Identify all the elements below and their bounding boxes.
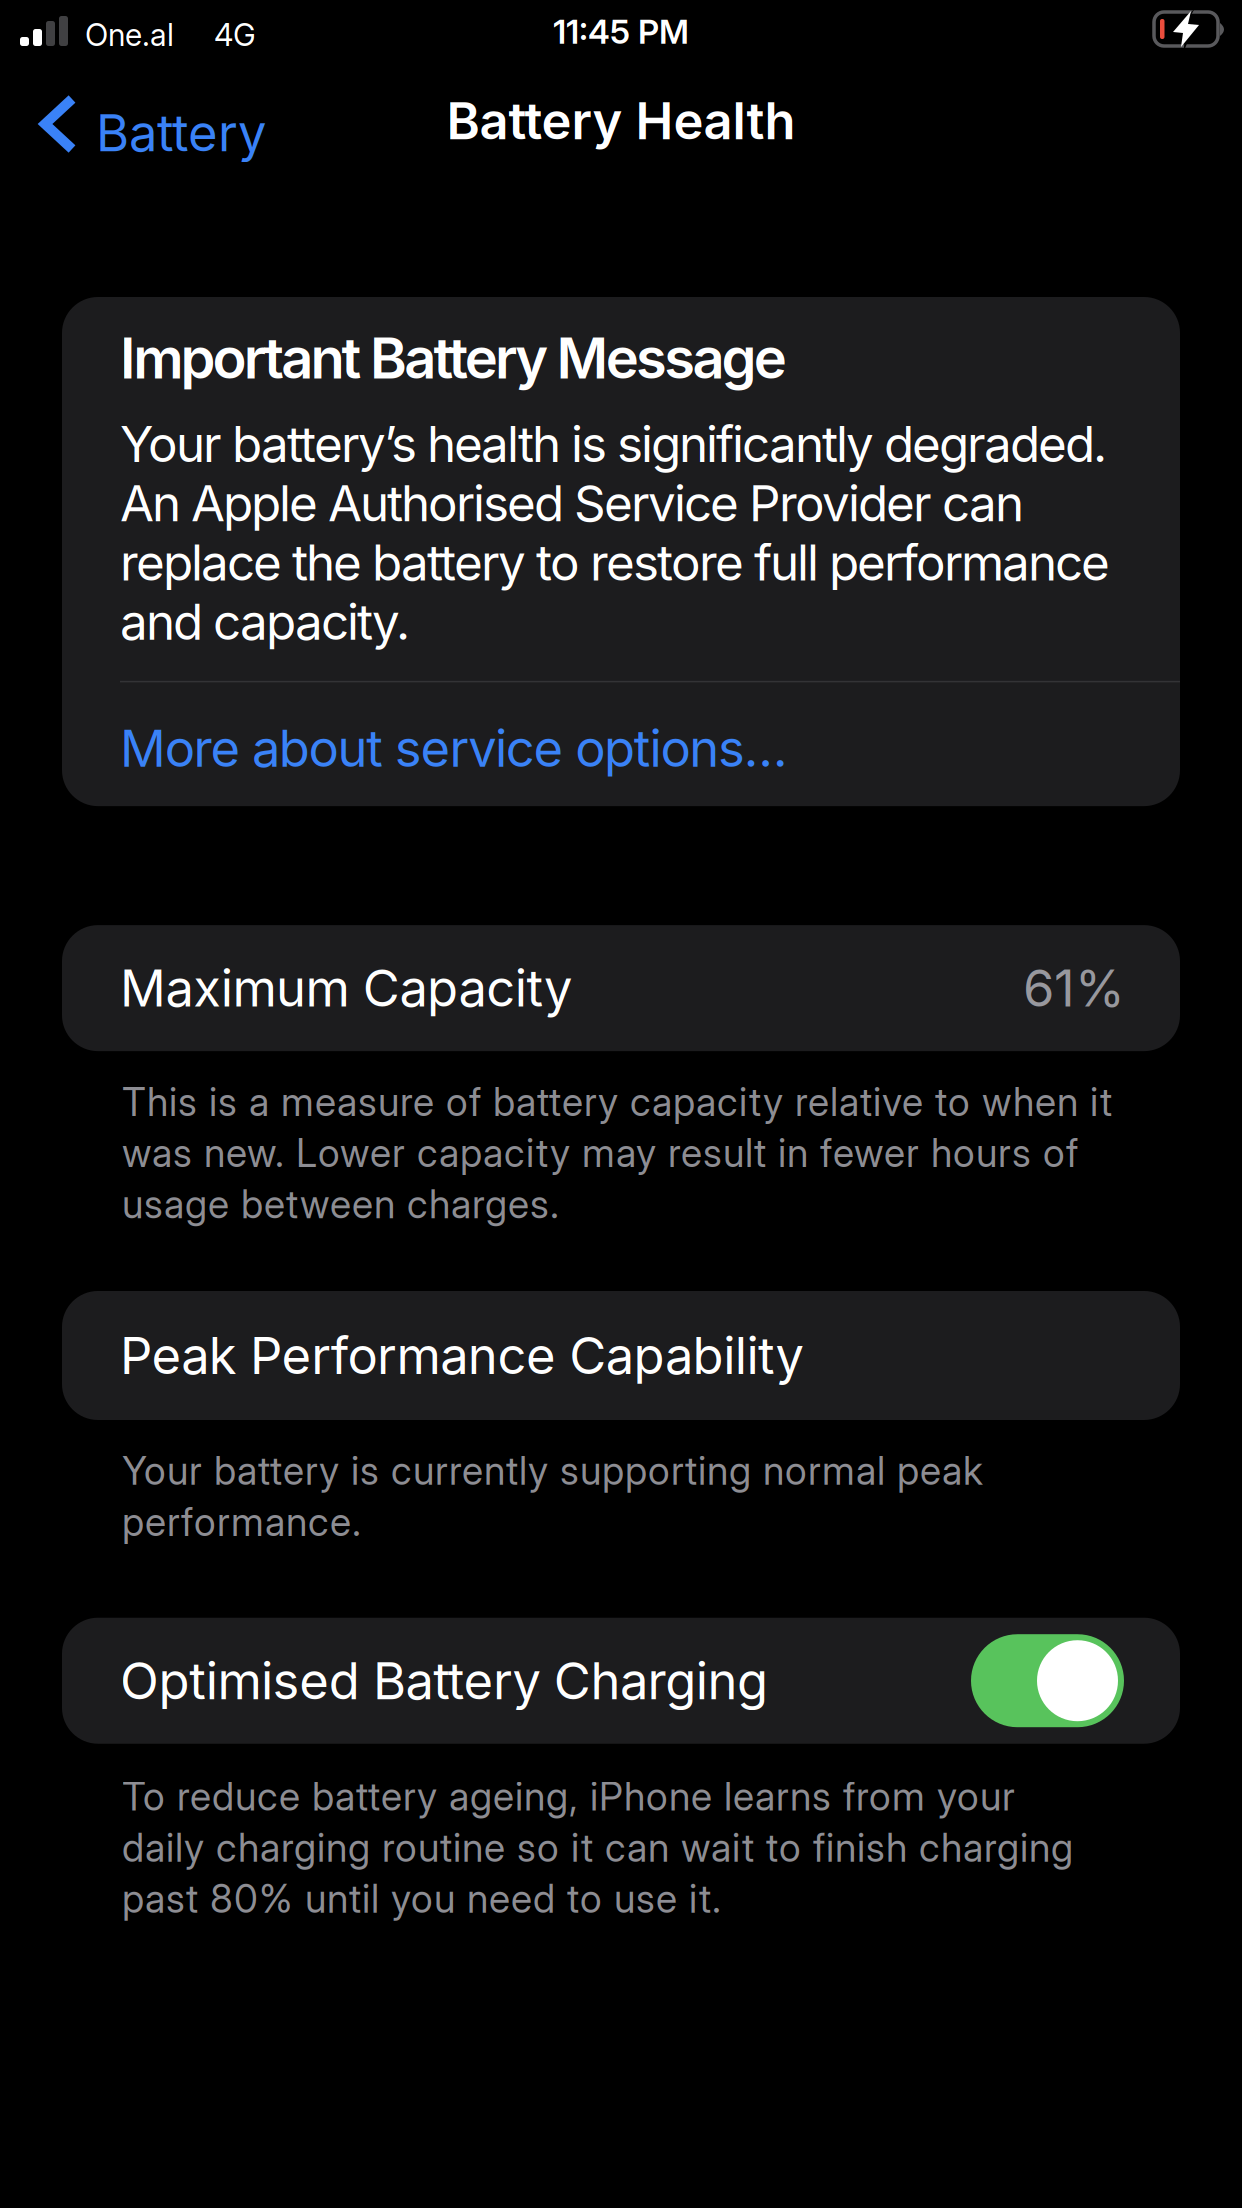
staticText: Your battery’s health is significantly d…	[120, 415, 1110, 651]
staticText: Optimised Battery Charging	[120, 1651, 768, 1711]
staticText: Important Battery Message	[120, 325, 787, 391]
staticText: To reduce battery ageing, iPhone learns …	[122, 1774, 1073, 1922]
staticText: One.al	[85, 17, 174, 53]
staticText: 11:45 PM	[553, 12, 689, 51]
staticText: Battery	[96, 103, 266, 163]
staticText: This is a measure of battery capacity re…	[122, 1079, 1112, 1227]
staticText: 4G	[214, 17, 256, 53]
button[interactable]: Optimised Battery Charging	[971, 1634, 1124, 1727]
staticText: Maximum Capacity	[120, 958, 572, 1018]
staticText: Peak Performance Capability	[120, 1326, 804, 1385]
staticText: Battery Health	[446, 91, 795, 151]
button[interactable]: Back	[62, 63, 266, 163]
staticText: Your battery is currently supporting nor…	[122, 1448, 983, 1545]
button[interactable]: More about service options…	[62, 682, 788, 806]
staticText: More about service options…	[120, 718, 788, 778]
staticText: 61%	[1023, 958, 1125, 1018]
